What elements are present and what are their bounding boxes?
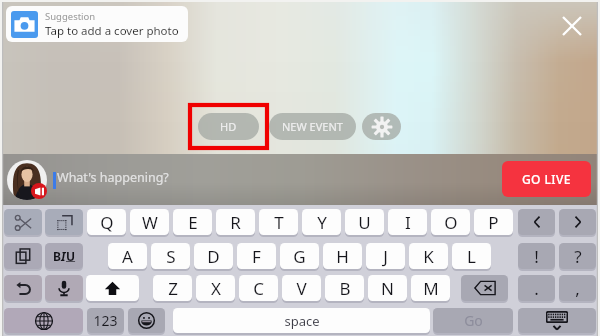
button[interactable]: Previous field bbox=[518, 209, 555, 235]
button[interactable]: T bbox=[259, 209, 298, 235]
button[interactable]: V bbox=[282, 275, 321, 301]
staticText: P bbox=[488, 211, 499, 234]
staticText: F bbox=[252, 245, 261, 268]
button[interactable]: N bbox=[368, 275, 407, 301]
staticText: W bbox=[142, 211, 158, 234]
button[interactable]: H bbox=[323, 243, 362, 269]
button[interactable]: C bbox=[239, 275, 278, 301]
button[interactable]: Profile bbox=[7, 160, 47, 200]
staticText: K bbox=[423, 245, 434, 268]
button[interactable]: Next field bbox=[559, 209, 596, 235]
button[interactable]: Suggestion bbox=[6, 6, 188, 42]
staticText: Z bbox=[168, 277, 178, 300]
button[interactable]: M bbox=[411, 275, 450, 301]
button[interactable]: Close bbox=[556, 10, 588, 42]
button[interactable]: E bbox=[173, 209, 212, 235]
staticText: X bbox=[211, 277, 221, 300]
staticText: I bbox=[405, 211, 411, 234]
button[interactable]: S bbox=[151, 243, 190, 269]
staticText: 123 bbox=[93, 311, 118, 330]
staticText: T bbox=[274, 211, 284, 234]
staticText: A bbox=[122, 245, 133, 268]
button[interactable]: Undo bbox=[4, 275, 42, 301]
staticText: NEW EVENT bbox=[282, 119, 343, 134]
button[interactable]: K bbox=[409, 243, 448, 269]
staticText: Suggestion bbox=[45, 10, 96, 23]
button[interactable]: Select all bbox=[45, 209, 83, 235]
staticText: U bbox=[358, 211, 371, 234]
button[interactable]: Q bbox=[87, 209, 126, 235]
button[interactable]: U bbox=[345, 209, 384, 235]
button[interactable]: Settings bbox=[362, 113, 401, 140]
button[interactable]: D bbox=[194, 243, 233, 269]
staticText: Q bbox=[100, 211, 114, 234]
staticText: E bbox=[188, 211, 198, 234]
button[interactable]: G bbox=[280, 243, 319, 269]
staticText: What's happening? bbox=[57, 169, 169, 186]
staticText: HD bbox=[220, 119, 237, 134]
staticText: GO LIVE bbox=[522, 171, 571, 187]
staticText: D bbox=[207, 245, 220, 268]
staticText: Y bbox=[317, 211, 327, 234]
staticText: J bbox=[383, 245, 388, 268]
button[interactable]: HD bbox=[198, 113, 259, 140]
staticText: L bbox=[467, 245, 476, 268]
button[interactable]: X bbox=[196, 275, 235, 301]
button[interactable]: GO LIVE bbox=[502, 161, 591, 197]
button[interactable]: R bbox=[216, 209, 255, 235]
button[interactable]: Backspace bbox=[461, 275, 508, 301]
button[interactable]: 123 bbox=[87, 308, 124, 333]
button[interactable]: Hide keyboard bbox=[518, 308, 596, 333]
button[interactable]: Change language bbox=[4, 308, 83, 333]
button[interactable]: O bbox=[431, 209, 470, 235]
button[interactable]: Shift bbox=[86, 275, 139, 301]
button[interactable]: L bbox=[452, 243, 491, 269]
button[interactable]: ? bbox=[559, 243, 596, 269]
staticText: H bbox=[336, 245, 349, 268]
button[interactable]: Emoji bbox=[128, 308, 165, 333]
staticText: V bbox=[296, 277, 307, 300]
staticText: R bbox=[230, 211, 241, 234]
button[interactable]: . bbox=[518, 275, 555, 301]
button[interactable]: Y bbox=[302, 209, 341, 235]
staticText: M bbox=[423, 277, 439, 300]
staticText: N bbox=[381, 277, 394, 300]
staticText: ! bbox=[534, 245, 539, 268]
staticText: U bbox=[66, 248, 76, 264]
button[interactable]: A bbox=[108, 243, 147, 269]
button[interactable]: J bbox=[366, 243, 405, 269]
button[interactable]: Copy bbox=[4, 243, 42, 269]
button[interactable]: I bbox=[388, 209, 427, 235]
staticText: . bbox=[534, 277, 539, 300]
staticText: , bbox=[575, 277, 580, 300]
button[interactable]: Text format bbox=[45, 243, 83, 269]
button[interactable]: Voice input bbox=[45, 275, 83, 301]
button[interactable]: NEW EVENT bbox=[269, 113, 356, 140]
button[interactable]: Go bbox=[433, 308, 513, 333]
staticText: S bbox=[166, 245, 176, 268]
staticText: Tap to add a cover photo bbox=[45, 23, 179, 39]
staticText: ? bbox=[574, 245, 582, 268]
button[interactable]: space bbox=[173, 308, 430, 333]
button[interactable]: P bbox=[474, 209, 513, 235]
button[interactable]: Z bbox=[153, 275, 192, 301]
staticText: Go bbox=[464, 311, 483, 330]
staticText: O bbox=[444, 211, 458, 234]
button[interactable]: ! bbox=[518, 243, 555, 269]
button[interactable]: , bbox=[559, 275, 596, 301]
staticText: C bbox=[253, 277, 264, 300]
staticText: space bbox=[284, 312, 320, 330]
staticText: I bbox=[61, 248, 66, 264]
staticText: B bbox=[339, 277, 351, 300]
button[interactable]: W bbox=[130, 209, 169, 235]
staticText: G bbox=[293, 245, 306, 268]
button[interactable]: Cut bbox=[4, 209, 42, 235]
button[interactable]: F bbox=[237, 243, 276, 269]
staticText: B bbox=[53, 248, 61, 264]
button[interactable]: B bbox=[325, 275, 364, 301]
